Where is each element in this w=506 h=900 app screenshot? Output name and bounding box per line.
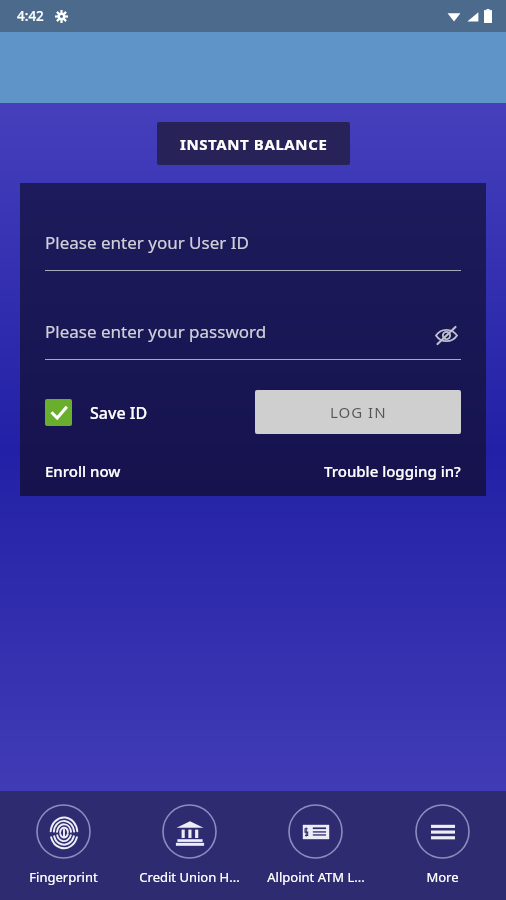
staticText: Please enter your User ID xyxy=(45,231,249,254)
button[interactable]: Allpoint ATM L... xyxy=(252,791,379,900)
button[interactable]: Fingerprint xyxy=(0,791,126,900)
button[interactable]: Credit Union H... xyxy=(126,791,252,900)
staticText: LOG IN xyxy=(330,402,387,422)
staticText: Fingerprint xyxy=(29,868,98,886)
staticText: Allpoint ATM L... xyxy=(267,868,365,886)
staticText: Save ID xyxy=(90,402,148,424)
staticText: Trouble logging in? xyxy=(324,461,461,481)
button[interactable]: Trouble logging in? xyxy=(324,461,461,481)
button[interactable]: More xyxy=(379,791,506,900)
button[interactable]: Show password xyxy=(431,320,461,350)
staticText: 4:42 xyxy=(17,7,44,25)
button[interactable]: Please enter your password xyxy=(45,320,267,343)
staticText: Credit Union H... xyxy=(139,868,240,886)
staticText: INSTANT BALANCE xyxy=(180,134,328,154)
staticText: More xyxy=(426,868,459,886)
button[interactable]: Enroll now xyxy=(45,461,121,481)
button[interactable]: LOG IN xyxy=(255,390,461,434)
button[interactable]: INSTANT BALANCE xyxy=(157,122,350,165)
staticText: Enroll now xyxy=(45,461,121,481)
button[interactable]: Please enter your User ID xyxy=(45,231,461,271)
button[interactable]: Save ID xyxy=(45,399,148,426)
